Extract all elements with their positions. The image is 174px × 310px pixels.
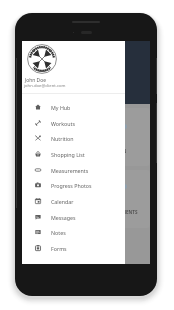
staticText: Shopping List (51, 151, 85, 158)
staticText: Forms (51, 245, 67, 252)
staticText: Measurements (51, 167, 89, 174)
button[interactable]: Progress Photos (22, 177, 125, 193)
staticText: Progress Photos (51, 182, 92, 189)
staticText: TODAY (108, 93, 124, 99)
button[interactable]: Shopping List (22, 146, 125, 162)
button[interactable]: Workouts (22, 115, 125, 131)
button[interactable]: Messages (22, 209, 125, 225)
staticText: Nutrition (51, 135, 74, 142)
button[interactable]: Nutrition (22, 130, 125, 146)
staticText: SESSION (107, 148, 127, 154)
staticText: Notes (51, 229, 66, 236)
staticText: Messages (51, 214, 76, 221)
button[interactable]: My Hub (22, 99, 125, 115)
button[interactable]: Notes (22, 224, 125, 240)
button[interactable]: Measurements (22, 162, 125, 178)
button[interactable]: Forms (22, 240, 125, 256)
button[interactable]: Calendar (22, 193, 125, 209)
staticText: MEASUREMENTS (100, 209, 138, 215)
staticText: john.doe@client.com (24, 83, 66, 89)
staticText: My Hub (51, 104, 71, 111)
staticText: John Doe (25, 77, 46, 84)
staticText: Workouts (51, 120, 75, 127)
staticText: Calendar (51, 198, 74, 205)
